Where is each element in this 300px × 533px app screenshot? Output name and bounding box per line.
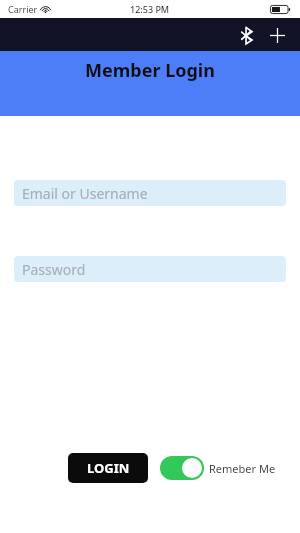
button[interactable]: Remember Me toggle <box>160 456 276 480</box>
button[interactable]: Bluetooth <box>234 22 260 48</box>
staticText: Password <box>22 260 86 279</box>
button[interactable]: Email or Username <box>14 180 286 206</box>
staticText: LOGIN <box>87 459 130 477</box>
button[interactable]: Add <box>264 22 290 48</box>
staticText: Member Login <box>85 58 215 83</box>
staticText: Remeber Me <box>209 461 276 476</box>
staticText: 12:53 PM <box>130 3 170 15</box>
button[interactable]: LOGIN <box>68 453 148 483</box>
other: Remember Me toggle <box>160 456 204 480</box>
staticText: Email or Username <box>22 184 148 203</box>
staticText: Carrier <box>8 3 38 15</box>
button[interactable]: Password <box>14 256 286 282</box>
